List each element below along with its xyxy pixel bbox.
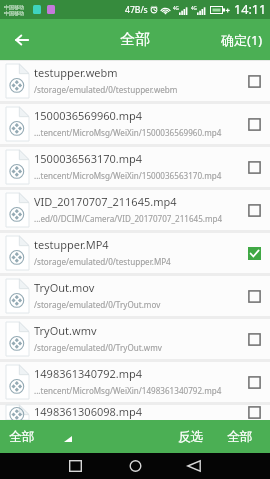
staticText: 全部 [227, 429, 253, 445]
staticText: ...tencent/MicroMsg/WeiXin/1500036563170… [34, 170, 222, 181]
staticText: 全部 [120, 30, 150, 49]
staticText: 1500036563170.mp4 [34, 151, 143, 166]
button[interactable]: Home [122, 453, 148, 479]
button[interactable]: 全部 [0, 420, 76, 453]
staticText: 1500036569960.mp4 [34, 108, 143, 123]
button[interactable]: 反选 [172, 420, 210, 453]
staticText: testupper.webm [34, 65, 118, 80]
staticText: testupper.MP4 [34, 237, 109, 252]
button[interactable]: Select file [245, 330, 263, 348]
button[interactable]: Select file [245, 115, 263, 133]
button[interactable]: 1498361340792.mp4 [0, 362, 270, 402]
staticText: ...tencent/MicroMsg/WeiXin/1500036569960… [34, 127, 222, 138]
button[interactable]: Select file [245, 201, 263, 219]
button[interactable]: 确定(1) [212, 19, 270, 60]
staticText: /storage/emulated/0/TryOut.mov [34, 299, 161, 310]
staticText: 全部 [9, 429, 35, 445]
button[interactable]: Select file [245, 158, 263, 176]
button[interactable]: Back [181, 453, 207, 479]
staticText: /storage/emulated/0/TryOut.wmv [34, 342, 162, 353]
staticText: 1498361306098.mp4 [34, 404, 143, 419]
button[interactable]: testupper.webm [0, 61, 270, 101]
button[interactable]: Select file [245, 405, 263, 420]
staticText: ...ed/0/DCIM/Camera/VID_20170707_211645.… [34, 213, 223, 224]
button[interactable]: TryOut.wmv [0, 319, 270, 359]
staticText: /storage/emulated/0/testupper.MP4 [34, 256, 171, 267]
staticText: 中国移动 [4, 4, 24, 10]
staticText: TryOut.wmv [34, 323, 97, 338]
staticText: 中国移动 [4, 10, 24, 16]
staticText: 1498361340792.mp4 [34, 366, 143, 381]
staticText: 4G [173, 5, 179, 11]
staticText: 14:11 [234, 1, 267, 18]
staticText: 确定(1) [221, 31, 263, 49]
button[interactable]: 1498361306098.mp4 [0, 405, 270, 420]
staticText: TryOut.mov [34, 280, 95, 295]
staticText: 4G [191, 5, 197, 11]
button[interactable]: Select file [245, 287, 263, 305]
button[interactable]: Select file [245, 373, 263, 391]
button[interactable]: 1500036563170.mp4 [0, 147, 270, 187]
button[interactable]: TryOut.mov [0, 276, 270, 316]
staticText: VID_20170707_211645.mp4 [34, 194, 177, 209]
button[interactable]: Select file [245, 72, 263, 90]
button[interactable]: Recent apps [62, 453, 88, 479]
staticText: 反选 [178, 429, 204, 445]
button[interactable]: 全部 [221, 420, 270, 453]
staticText: /storage/emulated/0/testupper.webm [34, 84, 178, 95]
button[interactable]: Back [0, 19, 44, 60]
staticText: 47B/s [125, 4, 148, 16]
staticText: ...tencent/MicroMsg/WeiXin/1498361340792… [34, 385, 222, 396]
button[interactable]: 1500036569960.mp4 [0, 104, 270, 144]
button[interactable]: VID_20170707_211645.mp4 [0, 190, 270, 230]
button[interactable]: Select file [245, 244, 263, 262]
button[interactable]: testupper.MP4 [0, 233, 270, 273]
